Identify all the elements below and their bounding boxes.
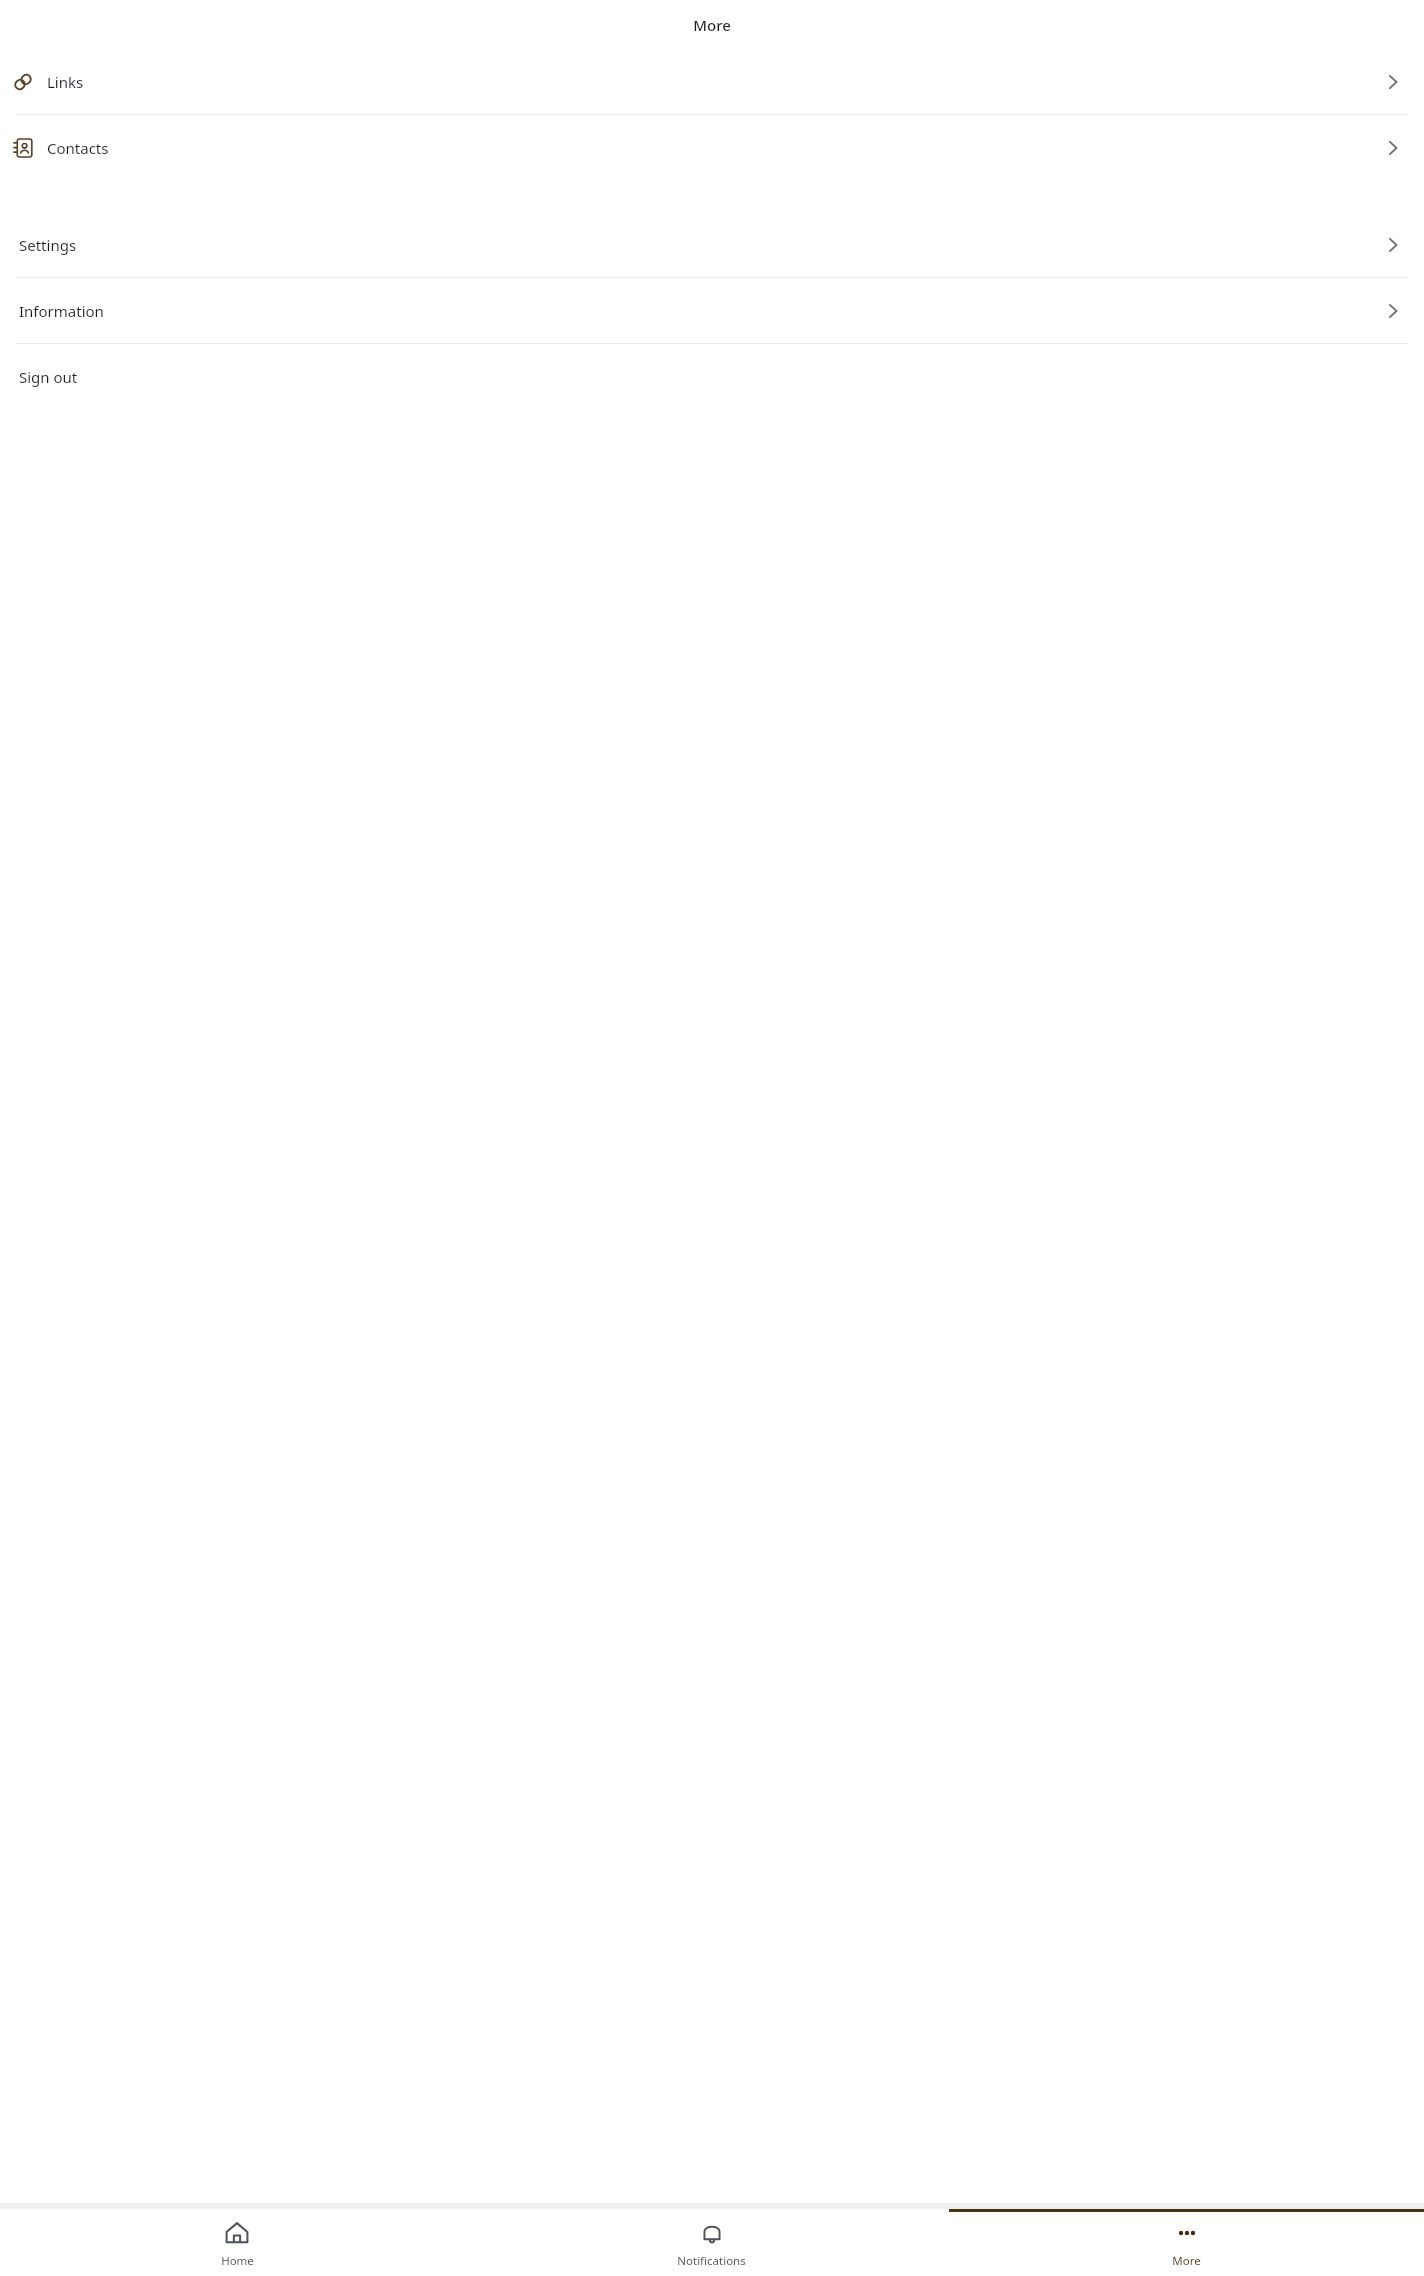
staticText: Links: [47, 72, 84, 92]
button[interactable]: Notifications: [474, 2212, 949, 2276]
button[interactable]: Contacts: [0, 115, 1424, 180]
staticText: Contacts: [47, 138, 109, 158]
button[interactable]: Information: [0, 278, 1424, 343]
staticText: Home: [221, 2253, 254, 2269]
button[interactable]: Home: [0, 2212, 474, 2276]
staticText: More: [1172, 2253, 1201, 2269]
button[interactable]: Settings: [0, 212, 1424, 277]
staticText: Sign out: [19, 367, 78, 387]
staticText: Information: [19, 301, 104, 321]
button[interactable]: Links: [0, 49, 1424, 114]
staticText: Settings: [19, 235, 77, 255]
staticText: Notifications: [677, 2253, 746, 2269]
button[interactable]: More: [949, 2212, 1424, 2276]
staticText: More: [693, 15, 731, 35]
button[interactable]: Sign out: [0, 344, 1424, 409]
